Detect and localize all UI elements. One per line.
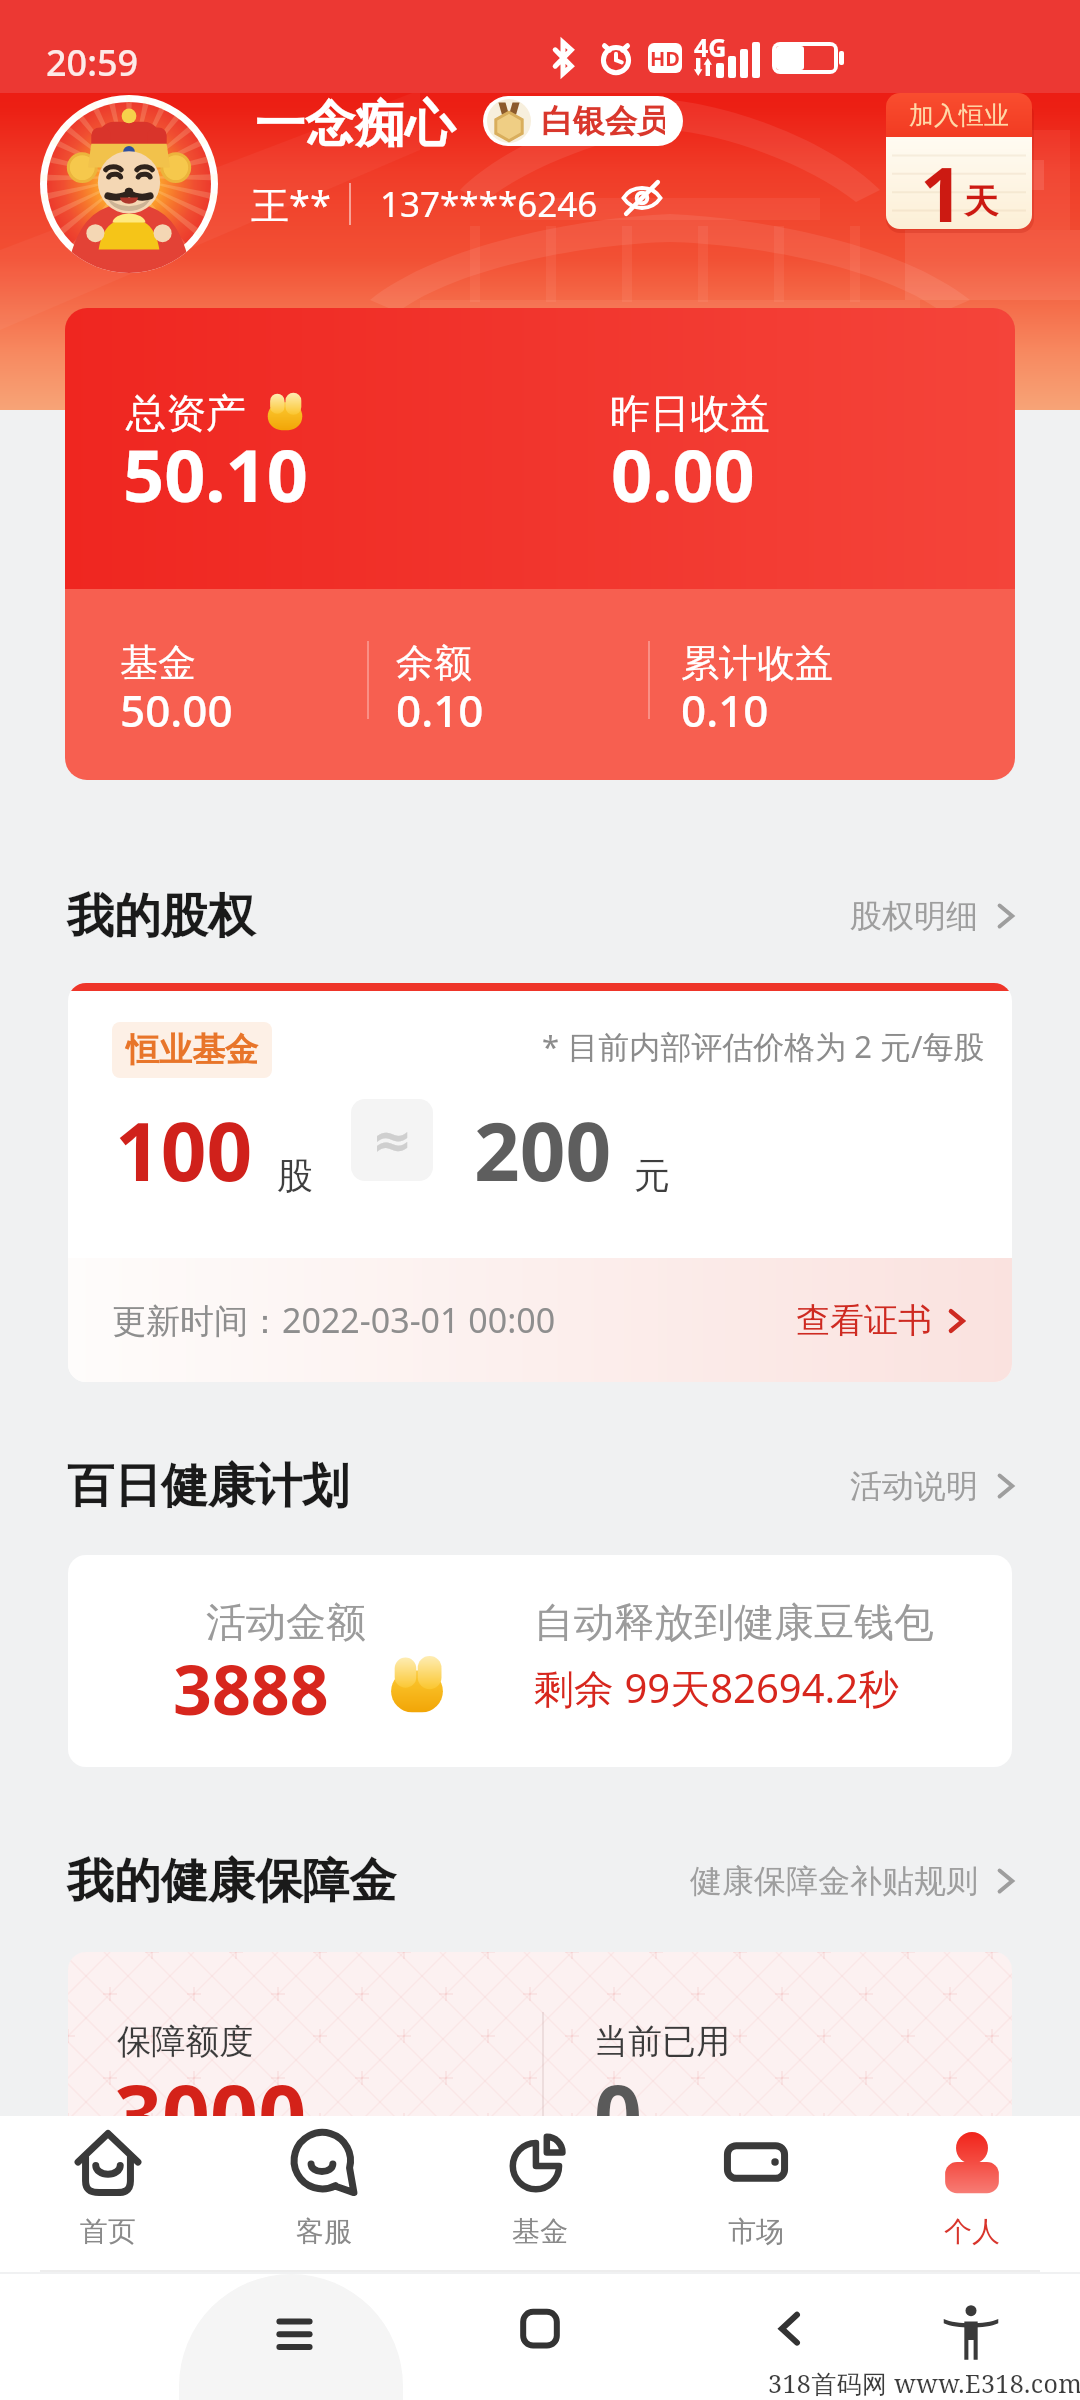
button[interactable]: Home [511,2302,569,2360]
staticText: 股权明细 [850,896,978,936]
staticText: 100 [115,1095,253,1204]
staticText: 元 [634,1153,670,1198]
staticText: 加入恒业 [909,100,1009,131]
staticText: 自动释放到健康豆钱包 [534,1597,934,1647]
staticText: 一念痴心 [255,93,455,156]
button[interactable]: 活动金额 [68,1555,1012,1767]
staticText: * 目前内部评估价格为 2 元/每股 [542,1025,985,1067]
button[interactable]: 健康保障金补贴规则 [684,1855,1026,1907]
button[interactable]: 客服 [216,2116,432,2272]
staticText: 20:59 [46,38,139,87]
staticText: 我的股权 [67,887,255,946]
staticText: 318首码网 www.E318.com [768,2366,1080,2400]
staticText: 0.10 [396,680,484,740]
staticText: 4G [694,30,727,64]
staticText: 王** [251,178,331,230]
staticText: 基金 [512,2214,568,2249]
staticText: 股 [277,1153,313,1198]
staticText: 查看证书 [796,1299,932,1342]
staticText: 恒业基金 [126,1029,258,1071]
staticText: 首页 [80,2214,136,2249]
button[interactable]: 基金 [432,2116,648,2272]
staticText: 我的健康保障金 [67,1852,396,1911]
staticText: 当前已用 [594,2020,730,2063]
button[interactable]: 个人 [864,2116,1080,2272]
staticText: 0.00 [611,425,755,523]
staticText: 3000 [114,2056,307,2170]
staticText: 50.10 [123,425,308,523]
staticText: 0 [594,2056,643,2170]
staticText: 1 [920,141,964,229]
staticText: 200 [474,1095,612,1204]
button[interactable]: 总资产 [65,308,1015,780]
button[interactable]: 股权明细 [844,890,1026,942]
staticText: 剩余 99天82694.2秒 [534,1660,899,1715]
button[interactable]: Hide balance [618,174,666,222]
staticText: 昨日收益 [610,388,770,438]
button[interactable]: 恒业基金 [68,983,1012,1382]
button[interactable]: Profile avatar [40,95,218,273]
button[interactable]: 市场 [648,2116,864,2272]
staticText: 客服 [296,2214,352,2249]
staticText: 0.10 [681,680,769,740]
button[interactable]: 更新时间：2022-03-01 00:00 [68,1258,1012,1382]
button[interactable]: Recent apps [262,2302,320,2360]
button[interactable]: 活动说明 [844,1460,1026,1512]
staticText: 137****6246 [380,180,598,228]
button[interactable]: 白银会员 [483,96,683,146]
button[interactable]: Back [761,2302,819,2360]
staticText: 市场 [728,2214,784,2249]
staticText: 健康保障金补贴规则 [690,1861,978,1901]
button[interactable]: 保障额度 [68,1952,1012,2252]
staticText: 天 [964,180,998,223]
staticText: 3888 [173,1642,329,1735]
button[interactable]: 加入恒业 [886,93,1034,233]
staticText: 活动金额 [206,1597,366,1647]
staticText: 保障额度 [117,2020,253,2063]
staticText: 活动说明 [850,1466,978,1506]
staticText: 50.00 [120,680,233,740]
staticText: 个人 [944,2214,1000,2249]
staticText: 累计收益 [681,639,833,687]
button[interactable]: Accessibility [942,2304,1000,2362]
staticText: 更新时间：2022-03-01 00:00 [112,1297,556,1343]
staticText: HD [650,45,680,72]
staticText: 基金 [120,639,196,687]
staticText: 余额 [396,639,472,687]
staticText: ≈ [372,1112,413,1168]
button[interactable]: 首页 [0,2116,216,2272]
staticText: 总资产 [126,388,246,438]
staticText: 百日健康计划 [67,1457,349,1516]
staticText: 白银会员 [541,101,665,141]
